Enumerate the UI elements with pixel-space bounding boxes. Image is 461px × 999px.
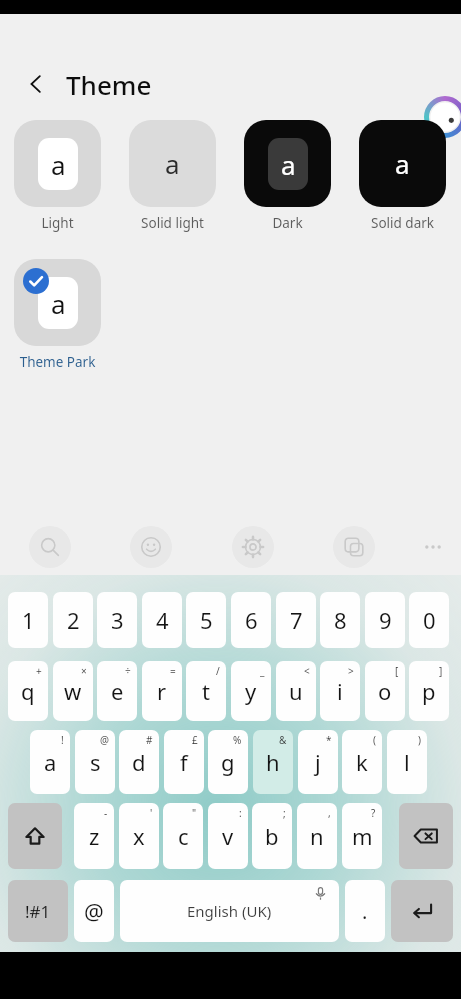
staticText: 5 <box>200 605 213 635</box>
button[interactable]: a <box>14 259 101 371</box>
button[interactable]: r <box>142 661 182 721</box>
button[interactable]: Translate <box>333 526 375 568</box>
button[interactable]: f <box>164 730 204 794</box>
button[interactable]: c <box>163 803 203 869</box>
button[interactable]: y <box>231 661 271 721</box>
staticText: 2 <box>67 605 80 635</box>
button[interactable]: 0 <box>409 592 449 648</box>
staticText: g <box>221 747 235 777</box>
button[interactable]: n <box>297 803 337 869</box>
button[interactable]: e <box>97 661 137 721</box>
staticText: ] <box>439 664 443 678</box>
staticText: Solid light <box>129 214 216 232</box>
button[interactable]: d <box>119 730 159 794</box>
button[interactable]: Settings <box>232 526 274 568</box>
staticText: d <box>132 747 146 777</box>
staticText: s <box>90 747 101 777</box>
button[interactable]: p <box>409 661 449 721</box>
button[interactable]: Emoji <box>130 526 172 568</box>
button[interactable]: o <box>365 661 405 721</box>
button[interactable]: Enter <box>391 880 453 942</box>
staticText: Dark <box>244 214 331 232</box>
staticText: 7 <box>290 605 303 635</box>
staticText: r <box>157 676 167 706</box>
button[interactable]: a <box>129 120 216 232</box>
staticText: v <box>222 821 234 851</box>
staticText: 1 <box>22 605 35 635</box>
button[interactable]: x <box>119 803 159 869</box>
button[interactable]: 3 <box>97 592 137 648</box>
button[interactable]: !#1 <box>8 880 68 942</box>
staticText: > <box>348 664 354 678</box>
button[interactable]: a <box>359 120 446 232</box>
button[interactable]: 5 <box>186 592 226 648</box>
button[interactable]: a <box>244 120 331 232</box>
staticText: 8 <box>334 605 347 635</box>
button[interactable]: g <box>208 730 248 794</box>
staticText: * <box>326 733 332 747</box>
button[interactable]: s <box>75 730 115 794</box>
button[interactable]: 2 <box>53 592 93 648</box>
staticText: Light <box>14 214 101 232</box>
button[interactable]: Search <box>29 526 71 568</box>
staticText: < <box>304 664 310 678</box>
button[interactable]: @ <box>74 880 114 942</box>
staticText: - <box>104 806 108 820</box>
button[interactable]: a <box>14 120 101 232</box>
staticText: 4 <box>156 605 169 635</box>
button[interactable]: Delete <box>399 803 453 869</box>
button[interactable]: q <box>8 661 48 721</box>
button[interactable]: Back <box>14 62 58 106</box>
button[interactable]: 4 <box>142 592 182 648</box>
staticText: a <box>51 147 66 182</box>
button[interactable]: j <box>298 730 338 794</box>
button[interactable]: 1 <box>8 592 48 648</box>
staticText: u <box>289 676 303 706</box>
button[interactable]: h <box>253 730 293 794</box>
button[interactable]: Theme store <box>424 96 461 138</box>
staticText: q <box>21 676 35 706</box>
staticText: l <box>404 747 410 777</box>
staticText: t <box>202 676 210 706</box>
staticText: 0 <box>423 605 436 635</box>
staticText: a <box>395 146 410 181</box>
staticText: Solid dark <box>359 214 446 232</box>
staticText: & <box>279 733 287 747</box>
staticText: 6 <box>245 605 258 635</box>
staticText: f <box>180 747 188 777</box>
button[interactable]: v <box>208 803 248 869</box>
staticText: English (UK) <box>187 901 272 921</box>
button[interactable]: 8 <box>320 592 360 648</box>
button[interactable]: b <box>252 803 292 869</box>
button[interactable]: t <box>186 661 226 721</box>
button[interactable]: u <box>276 661 316 721</box>
button[interactable]: z <box>74 803 114 869</box>
button[interactable]: a <box>30 730 70 794</box>
button[interactable]: English (UK) <box>120 880 339 942</box>
button[interactable]: l <box>387 730 427 794</box>
button[interactable]: i <box>320 661 360 721</box>
staticText: _ <box>260 664 265 678</box>
button[interactable]: More options <box>412 526 454 568</box>
staticText: × <box>81 664 87 678</box>
staticText: i <box>337 676 343 706</box>
staticText: ! <box>61 733 64 747</box>
staticText: 9 <box>379 605 392 635</box>
button[interactable]: m <box>342 803 382 869</box>
staticText: % <box>233 733 242 747</box>
button[interactable]: 6 <box>231 592 271 648</box>
button[interactable]: Shift <box>8 803 62 869</box>
staticText: " <box>192 806 197 820</box>
staticText: £ <box>192 733 198 747</box>
button[interactable]: 7 <box>276 592 316 648</box>
button[interactable]: k <box>342 730 382 794</box>
staticText: h <box>266 747 280 777</box>
button[interactable]: 9 <box>365 592 405 648</box>
staticText: j <box>315 747 321 777</box>
staticText: k <box>356 747 368 777</box>
staticText: ; <box>283 806 286 820</box>
button[interactable]: w <box>53 661 93 721</box>
staticText: @ <box>84 896 104 926</box>
staticText: z <box>89 821 100 851</box>
button[interactable]: . <box>345 880 385 942</box>
